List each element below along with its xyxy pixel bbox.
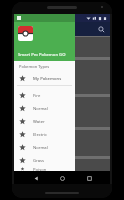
button[interactable]: Electric bbox=[14, 128, 75, 141]
button[interactable]: Recent apps bbox=[84, 173, 94, 183]
button[interactable] bbox=[14, 60, 110, 94]
button[interactable]: Back bbox=[31, 173, 41, 183]
button[interactable]: Poison bbox=[14, 167, 75, 171]
staticText: Electric bbox=[33, 132, 48, 138]
button[interactable]: Normal bbox=[14, 141, 75, 154]
button[interactable] bbox=[14, 97, 110, 127]
button[interactable] bbox=[14, 159, 110, 171]
button[interactable]: Smart Pro Pokemon GO bbox=[14, 14, 75, 61]
button[interactable]: Grass bbox=[14, 154, 75, 167]
staticText: Grass bbox=[33, 158, 45, 164]
button[interactable]: Fire bbox=[14, 89, 75, 102]
button[interactable]: Home bbox=[57, 173, 67, 183]
staticText: My Pokemons bbox=[33, 76, 62, 82]
staticText: Pokemon Types bbox=[19, 64, 50, 69]
staticText: Smart Pro Pokemon GO bbox=[18, 52, 66, 58]
button[interactable]: Normal bbox=[14, 102, 75, 115]
button[interactable]: Search bbox=[96, 24, 106, 34]
staticText: Water bbox=[33, 119, 45, 125]
staticText: Normal bbox=[33, 145, 48, 151]
staticText: Normal bbox=[33, 106, 48, 112]
staticText: Poison bbox=[33, 167, 47, 171]
button[interactable] bbox=[14, 37, 110, 57]
button[interactable]: My Pokemons bbox=[14, 72, 75, 85]
staticText: Fire bbox=[33, 93, 41, 99]
button[interactable]: Water bbox=[14, 115, 75, 128]
button[interactable] bbox=[14, 130, 110, 156]
